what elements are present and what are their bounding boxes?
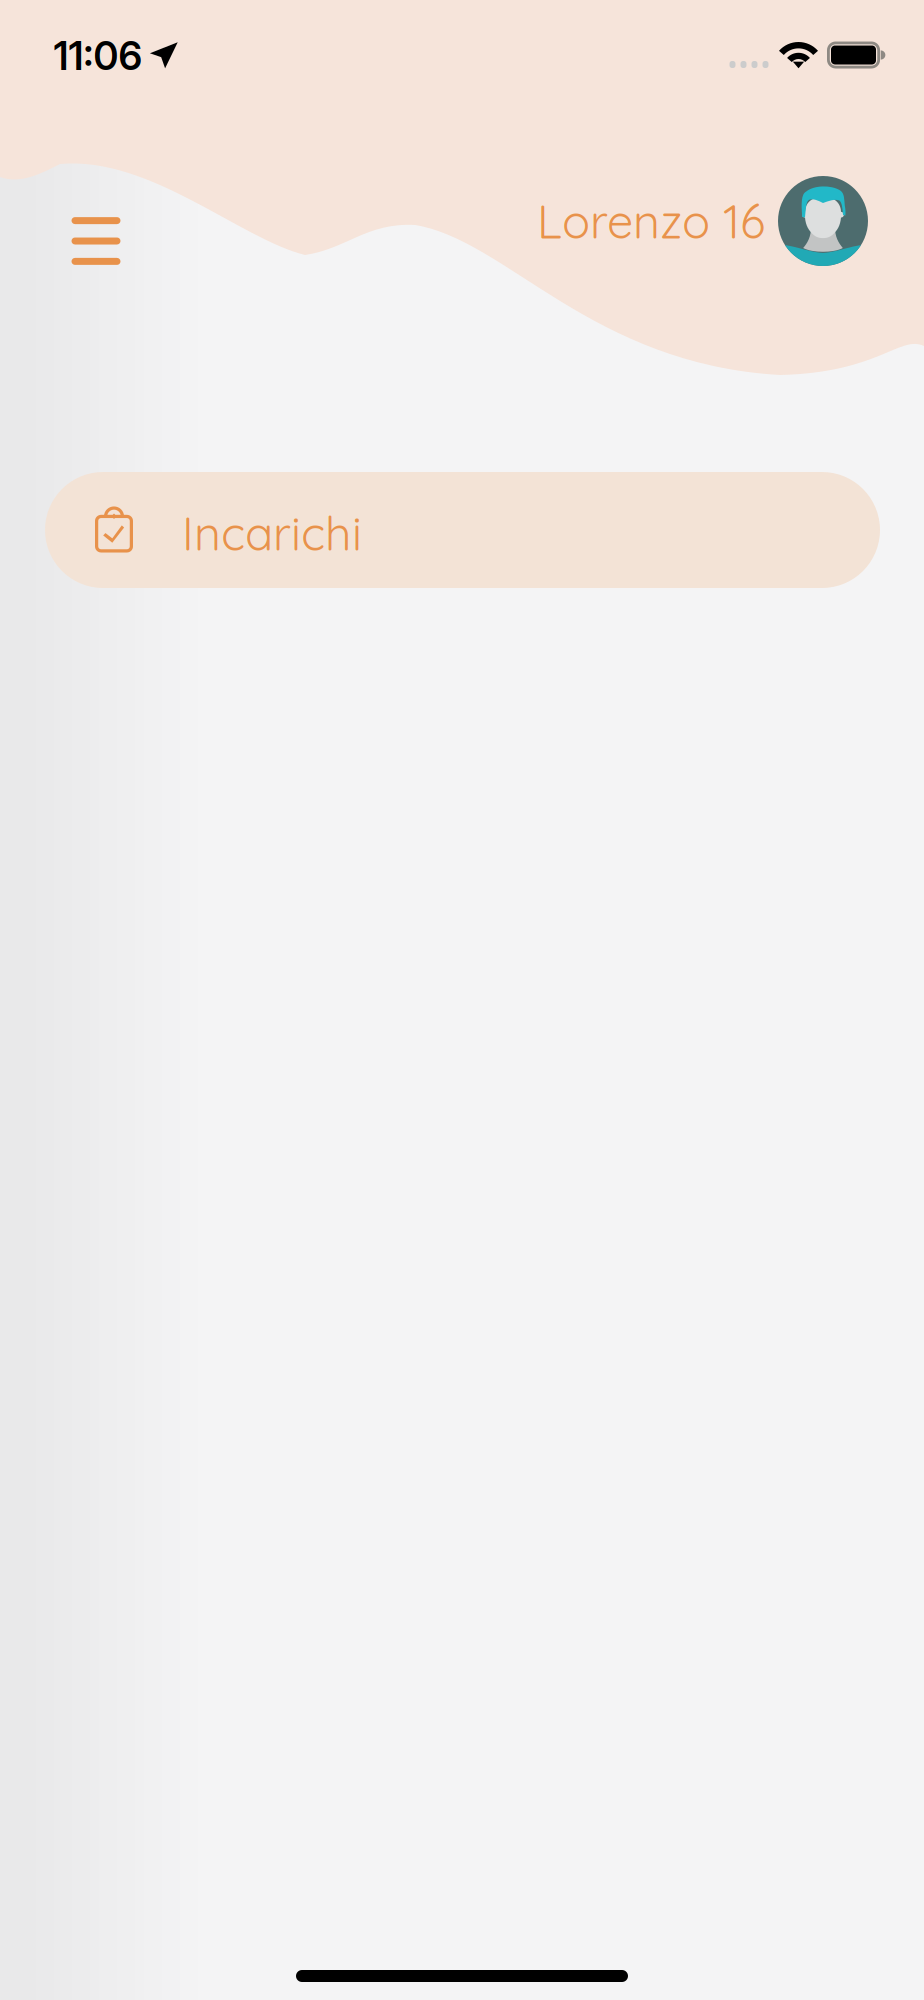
staticText: Lorenzo 16	[537, 192, 765, 250]
button[interactable]: Incarichi	[45, 472, 880, 588]
button[interactable]: Menu	[46, 191, 146, 291]
staticText: 11:06	[53, 33, 142, 79]
staticText: Incarichi	[182, 504, 362, 562]
button[interactable]: Lorenzo 16	[537, 170, 868, 272]
